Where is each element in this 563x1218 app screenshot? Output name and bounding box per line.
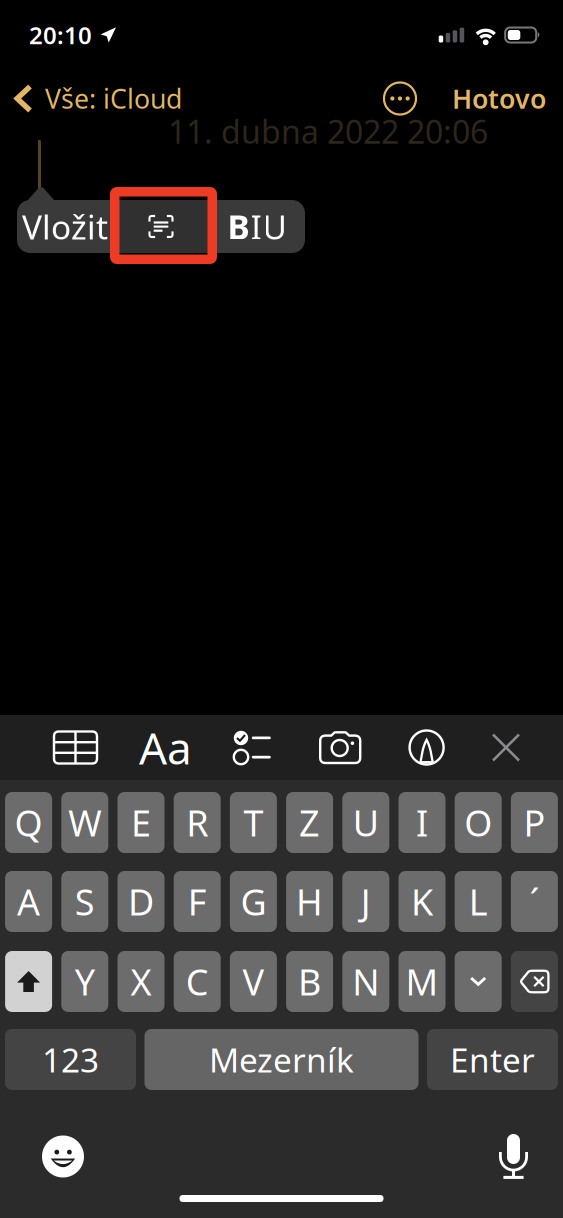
staticText: V (242, 958, 264, 1005)
button[interactable]: B (286, 951, 333, 1012)
staticText: F (188, 878, 207, 925)
staticText: M (405, 958, 438, 1005)
button[interactable]: N (342, 951, 389, 1012)
button[interactable]: Vložit (17, 200, 113, 253)
staticText: 123 (42, 1037, 99, 1082)
button[interactable]: P (511, 792, 558, 853)
button[interactable]: G (230, 871, 277, 932)
staticText: J (361, 878, 371, 925)
button[interactable]: Checklist (234, 722, 271, 772)
button[interactable]: Emoji (42, 1135, 84, 1177)
button[interactable]: Shift (5, 951, 52, 1012)
button[interactable]: Markup (410, 722, 444, 772)
button[interactable]: 123 (5, 1029, 136, 1090)
staticText: O (464, 799, 492, 846)
staticText: 20:10 (29, 19, 92, 51)
staticText: Z (299, 799, 320, 846)
staticText: I (250, 204, 261, 249)
button[interactable]: O (455, 792, 502, 853)
staticText: D (128, 878, 154, 925)
button[interactable]: K (398, 871, 445, 932)
staticText: I (416, 799, 428, 846)
button[interactable]: Dictate (499, 1134, 528, 1179)
staticText: Mezerník (209, 1037, 354, 1082)
button[interactable]: Vše: iCloud (0, 73, 182, 124)
staticText: L (469, 878, 488, 925)
button[interactable]: E (117, 792, 164, 853)
button[interactable]: Table (54, 722, 97, 772)
button[interactable]: Aa (146, 722, 184, 772)
staticText: R (186, 799, 208, 846)
button[interactable]: J (342, 871, 389, 932)
button[interactable]: T (230, 792, 277, 853)
button[interactable]: Mezerník (144, 1029, 418, 1090)
staticText: Vše: iCloud (45, 81, 182, 116)
staticText: Aa (139, 718, 192, 777)
button[interactable]: X (117, 951, 164, 1012)
staticText: Enter (450, 1037, 535, 1082)
button[interactable]: M (398, 951, 445, 1012)
staticText: H (296, 878, 323, 925)
staticText: U (262, 204, 286, 249)
staticText: B (298, 958, 321, 1005)
staticText: X (130, 958, 151, 1005)
button[interactable]: Z (286, 792, 333, 853)
staticText: Hotovo (452, 81, 546, 116)
button[interactable]: C (174, 951, 221, 1012)
staticText: K (411, 878, 433, 925)
staticText: Y (75, 958, 95, 1005)
staticText: B (227, 204, 249, 249)
button[interactable]: R (174, 792, 221, 853)
button[interactable]: Scan text (113, 200, 209, 253)
staticText: Q (15, 799, 43, 846)
button[interactable]: Y (61, 951, 108, 1012)
button[interactable]: I (398, 792, 445, 853)
staticText: C (186, 958, 209, 1005)
button[interactable]: W (61, 792, 108, 853)
staticText: Vložit (22, 204, 108, 249)
button[interactable]: Hide keyboard (493, 722, 519, 772)
button[interactable]: B (209, 200, 305, 253)
staticText: G (240, 878, 266, 925)
button[interactable]: V (230, 951, 277, 1012)
button[interactable]: Accents (455, 951, 502, 1012)
button[interactable]: Q (5, 792, 52, 853)
button[interactable]: Backspace (511, 951, 558, 1012)
button[interactable]: ´ (511, 871, 558, 932)
button[interactable]: Hotovo (452, 73, 563, 124)
staticText: E (131, 799, 151, 846)
staticText: W (68, 799, 101, 846)
button[interactable]: U (342, 792, 389, 853)
staticText: ´ (529, 878, 539, 925)
button[interactable]: S (61, 871, 108, 932)
button[interactable]: D (117, 871, 164, 932)
staticText: A (17, 878, 40, 925)
button[interactable]: L (455, 871, 502, 932)
button[interactable]: A (5, 871, 52, 932)
staticText: N (352, 958, 379, 1005)
staticText: S (75, 878, 95, 925)
staticText: 11. dubna 2022 20:06 (168, 110, 488, 152)
button[interactable]: More (378, 76, 422, 120)
staticText: T (243, 799, 263, 846)
button[interactable]: Camera (320, 722, 360, 772)
button[interactable]: F (174, 871, 221, 932)
staticText: P (523, 799, 545, 846)
button[interactable]: H (286, 871, 333, 932)
button[interactable]: Enter (427, 1029, 558, 1090)
staticText: U (353, 799, 379, 846)
